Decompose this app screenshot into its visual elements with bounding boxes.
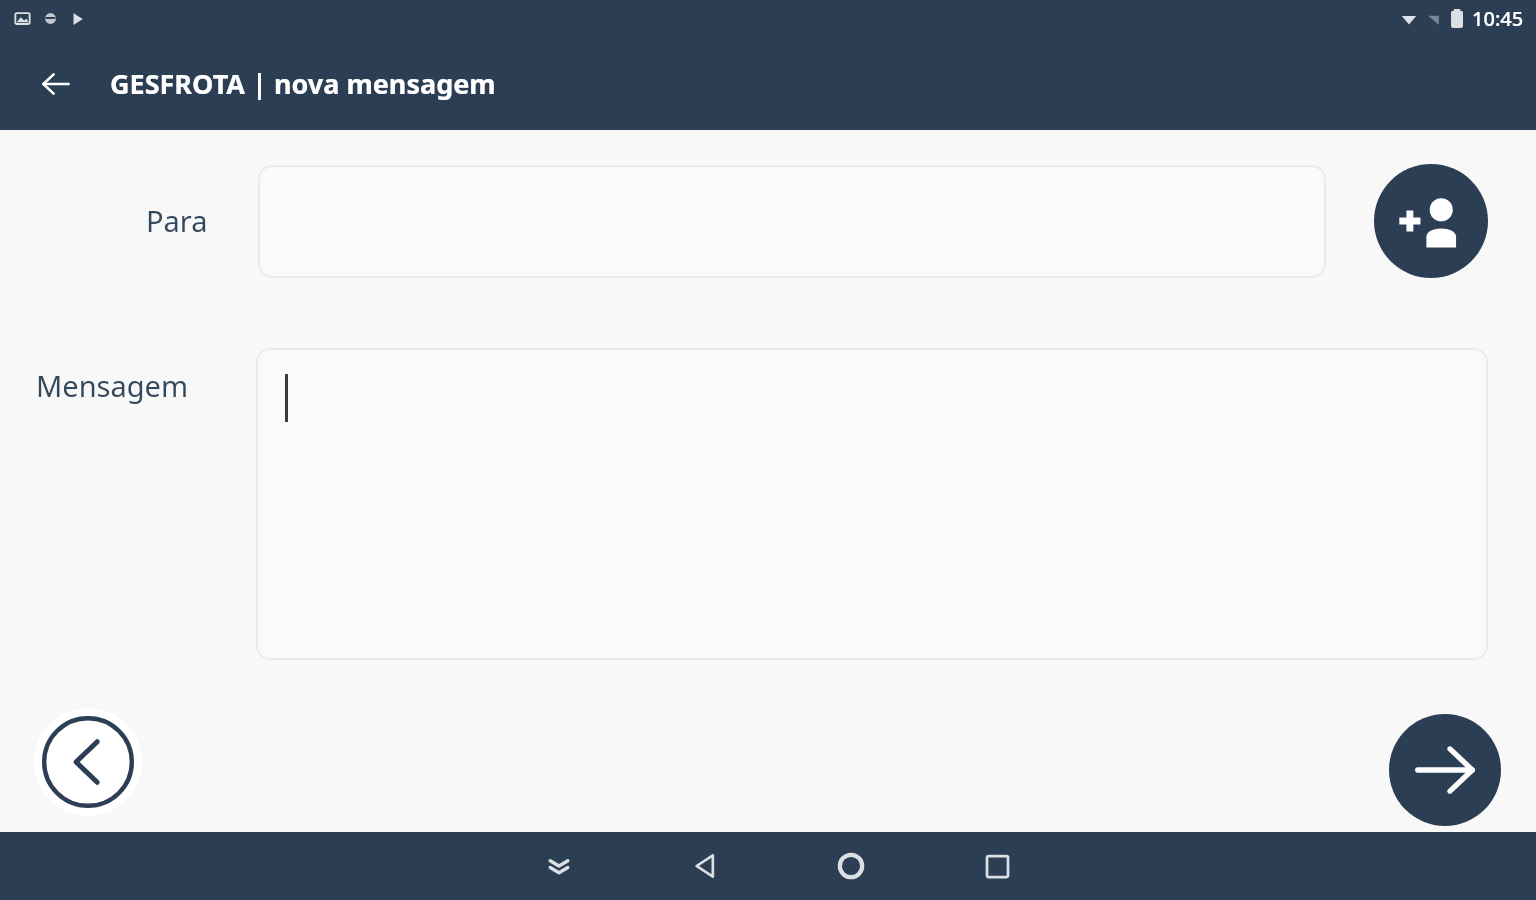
button[interactable]: Adicionar destinatário	[1374, 164, 1488, 278]
staticText: Mensagem	[36, 366, 189, 405]
button[interactable]: Recentes	[966, 835, 1028, 897]
button[interactable]: Voltar	[674, 835, 736, 897]
button[interactable]: Anterior	[34, 708, 142, 816]
staticText: Para	[146, 201, 208, 240]
staticText: GESFROTA | nova mensagem	[110, 65, 496, 102]
staticText: 10:45	[1472, 5, 1524, 32]
button[interactable]: Início	[820, 835, 882, 897]
button[interactable]: Voltar	[32, 60, 80, 108]
button[interactable]: Ocultar teclado	[528, 835, 590, 897]
button[interactable]: Mensagem	[256, 348, 1488, 660]
button[interactable]: Próximo	[1389, 714, 1501, 826]
